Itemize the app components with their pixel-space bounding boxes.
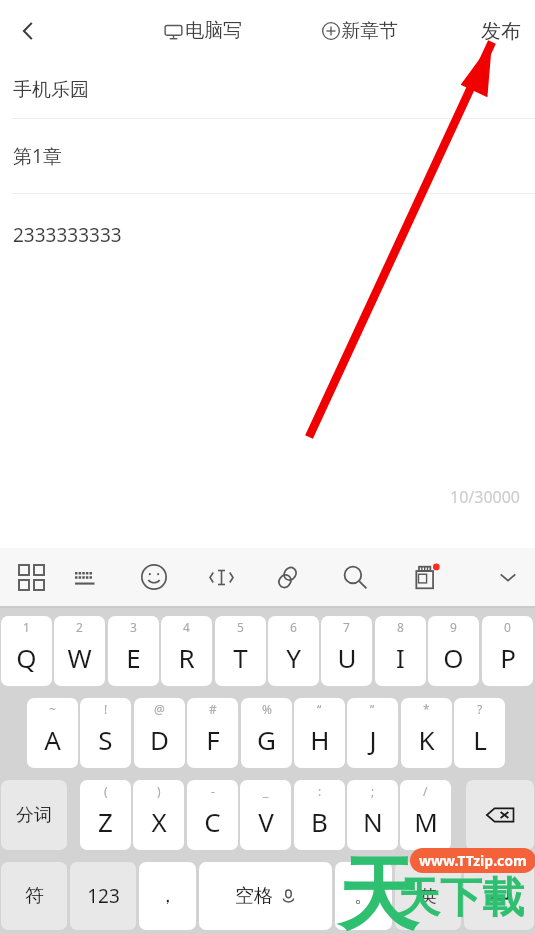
button[interactable]: 6	[268, 616, 319, 686]
button[interactable]: 2333333333	[0, 194, 535, 274]
staticText: 10/30000	[450, 486, 521, 508]
staticText: 2333333333	[13, 222, 122, 248]
button[interactable]: ，	[139, 862, 196, 930]
button[interactable]: /	[400, 780, 451, 850]
button[interactable]: 5	[215, 616, 266, 686]
staticText: 。	[354, 884, 373, 908]
staticText: 2	[76, 619, 83, 635]
staticText: D	[150, 722, 169, 757]
button[interactable]: 手机乐园	[0, 62, 535, 118]
button[interactable]: Emoji	[130, 548, 178, 606]
staticText: I	[396, 640, 405, 675]
staticText: !	[104, 701, 108, 717]
button[interactable]: ;	[347, 780, 398, 850]
staticText: M	[414, 804, 438, 839]
button[interactable]: Keyboard	[63, 548, 111, 606]
staticText: 123	[87, 883, 120, 909]
button[interactable]: #	[187, 698, 238, 768]
button[interactable]: 英	[395, 862, 461, 930]
staticText: F	[206, 722, 220, 757]
staticText: B	[311, 804, 328, 839]
staticText: N	[363, 804, 383, 839]
button[interactable]: 新章节	[318, 11, 402, 51]
staticText: A	[44, 722, 61, 757]
staticText: /	[423, 783, 428, 799]
staticText: 英	[420, 886, 437, 907]
button[interactable]: 第1章	[0, 119, 535, 193]
button[interactable]: -	[187, 780, 238, 850]
button[interactable]: Back	[0, 0, 56, 62]
staticText: “	[317, 701, 322, 717]
button[interactable]: 123	[70, 862, 136, 930]
button[interactable]: 8	[375, 616, 426, 686]
button[interactable]: Search	[331, 548, 379, 606]
button[interactable]: ?	[454, 698, 505, 768]
button[interactable]: ”	[347, 698, 398, 768]
staticText: X	[151, 804, 167, 839]
button[interactable]: 3	[108, 616, 159, 686]
staticText: O	[443, 640, 464, 675]
button[interactable]: Enter	[464, 862, 534, 930]
button[interactable]: 符	[1, 862, 67, 930]
staticText: G	[257, 722, 276, 757]
staticText: 4	[183, 619, 190, 635]
staticText: Z	[98, 804, 113, 839]
staticText: www.TTzip.com	[419, 851, 527, 870]
button[interactable]: 发布	[467, 9, 535, 54]
staticText: S	[98, 722, 113, 757]
button[interactable]: 7	[321, 616, 372, 686]
button[interactable]: 1	[1, 616, 52, 686]
staticText: 5	[237, 619, 244, 635]
button[interactable]: 2	[54, 616, 105, 686]
button[interactable]: !	[80, 698, 131, 768]
button[interactable]: 。	[335, 862, 392, 930]
button[interactable]: 电脑写	[160, 11, 246, 51]
staticText: Y	[286, 640, 301, 675]
staticText: @	[154, 701, 165, 717]
button[interactable]: 空格	[199, 862, 332, 930]
button[interactable]: )	[133, 780, 184, 850]
staticText: 空格	[235, 884, 273, 908]
button[interactable]: @	[134, 698, 185, 768]
button[interactable]: 4	[161, 616, 212, 686]
button[interactable]: 0	[482, 616, 533, 686]
button[interactable]: 分词	[1, 780, 67, 850]
staticText: 天下載	[398, 872, 524, 925]
button[interactable]: 9	[428, 616, 479, 686]
staticText: J	[369, 722, 377, 757]
button[interactable]: ~	[27, 698, 78, 768]
staticText: 分词	[16, 804, 52, 827]
staticText: K	[418, 722, 435, 757]
staticText: 电脑写	[185, 19, 242, 43]
staticText: ，	[158, 884, 177, 908]
button[interactable]: Store	[401, 548, 449, 606]
staticText: ?	[477, 701, 483, 717]
staticText: 9	[450, 619, 457, 635]
staticText: 符	[25, 884, 44, 908]
staticText: #	[209, 701, 217, 717]
staticText: (	[104, 783, 108, 799]
staticText: Q	[16, 640, 37, 675]
button[interactable]: Hide keyboard	[484, 548, 532, 606]
staticText: 3	[130, 619, 137, 635]
staticText: V	[258, 804, 274, 839]
staticText: 6	[290, 619, 297, 635]
staticText: 8	[397, 619, 404, 635]
button[interactable]: Backspace	[466, 780, 534, 850]
button[interactable]: *	[401, 698, 452, 768]
button[interactable]: :	[294, 780, 345, 850]
button[interactable]: Text cursor	[197, 548, 245, 606]
button[interactable]: _	[240, 780, 291, 850]
button[interactable]: %	[241, 698, 292, 768]
staticText: ;	[371, 783, 375, 799]
button[interactable]: (	[80, 780, 131, 850]
button[interactable]: “	[294, 698, 345, 768]
staticText: H	[310, 722, 330, 757]
staticText: T	[233, 640, 248, 675]
staticText: :	[318, 783, 322, 799]
staticText: *	[423, 701, 430, 717]
staticText: ~	[49, 701, 56, 717]
staticText: 0	[504, 619, 511, 635]
button[interactable]: Clipboard	[263, 548, 311, 606]
button[interactable]: Panels	[7, 548, 55, 606]
